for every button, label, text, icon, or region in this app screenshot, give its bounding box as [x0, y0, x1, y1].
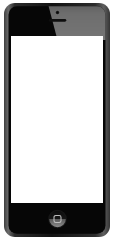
button[interactable]: Home button: [0, 0, 114, 240]
